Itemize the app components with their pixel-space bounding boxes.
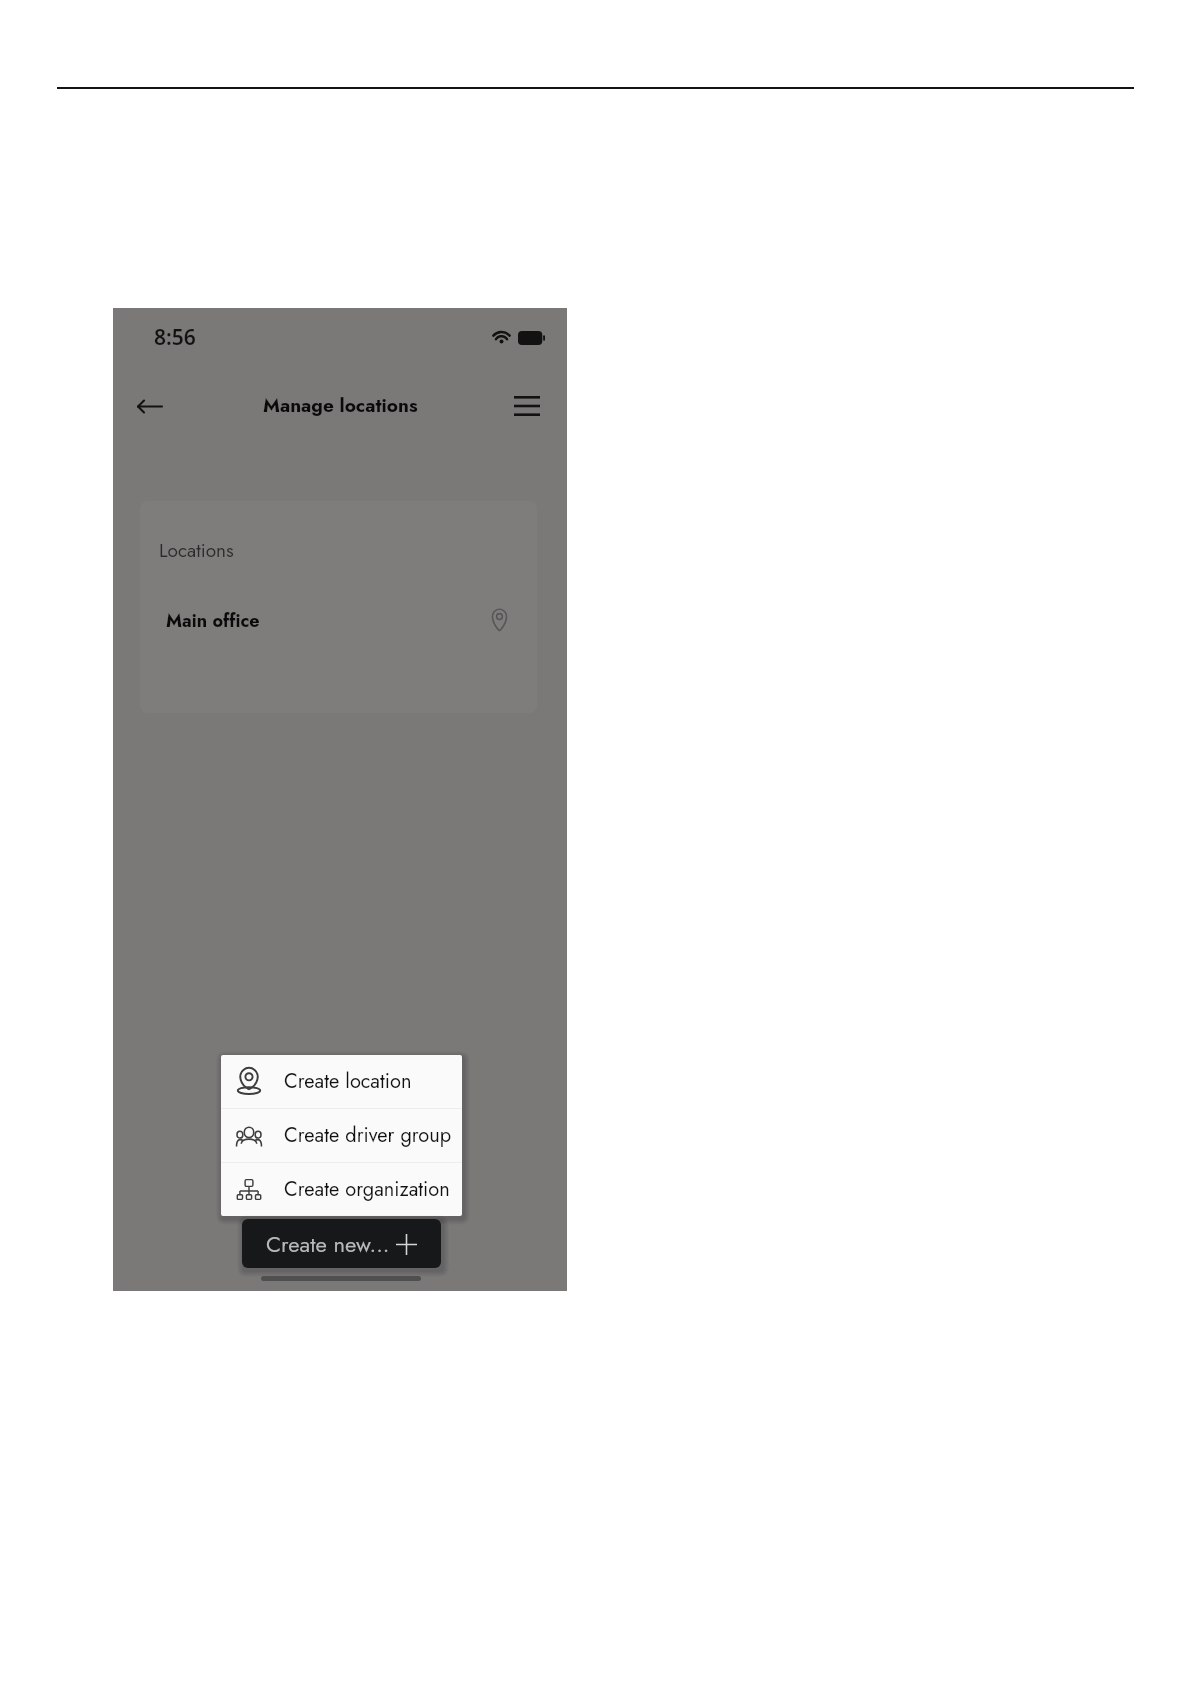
button[interactable]: Back xyxy=(121,378,177,434)
button[interactable]: Menu xyxy=(499,378,555,434)
staticText: Create driver group xyxy=(284,1121,452,1150)
button[interactable]: Create organization xyxy=(221,1163,462,1216)
button[interactable]: Create location xyxy=(221,1055,462,1108)
staticText: Create new... xyxy=(266,1228,390,1260)
staticText: Locations xyxy=(159,537,234,564)
button[interactable]: Main office xyxy=(140,586,537,656)
staticText: Main office xyxy=(166,608,260,634)
staticText: Create location xyxy=(284,1067,412,1096)
staticText: Manage locations xyxy=(263,392,418,419)
button[interactable]: Create new... xyxy=(242,1219,441,1268)
button[interactable]: Create driver group xyxy=(221,1109,462,1162)
staticText: Create organization xyxy=(284,1175,450,1204)
staticText: 8:56 xyxy=(154,323,196,352)
